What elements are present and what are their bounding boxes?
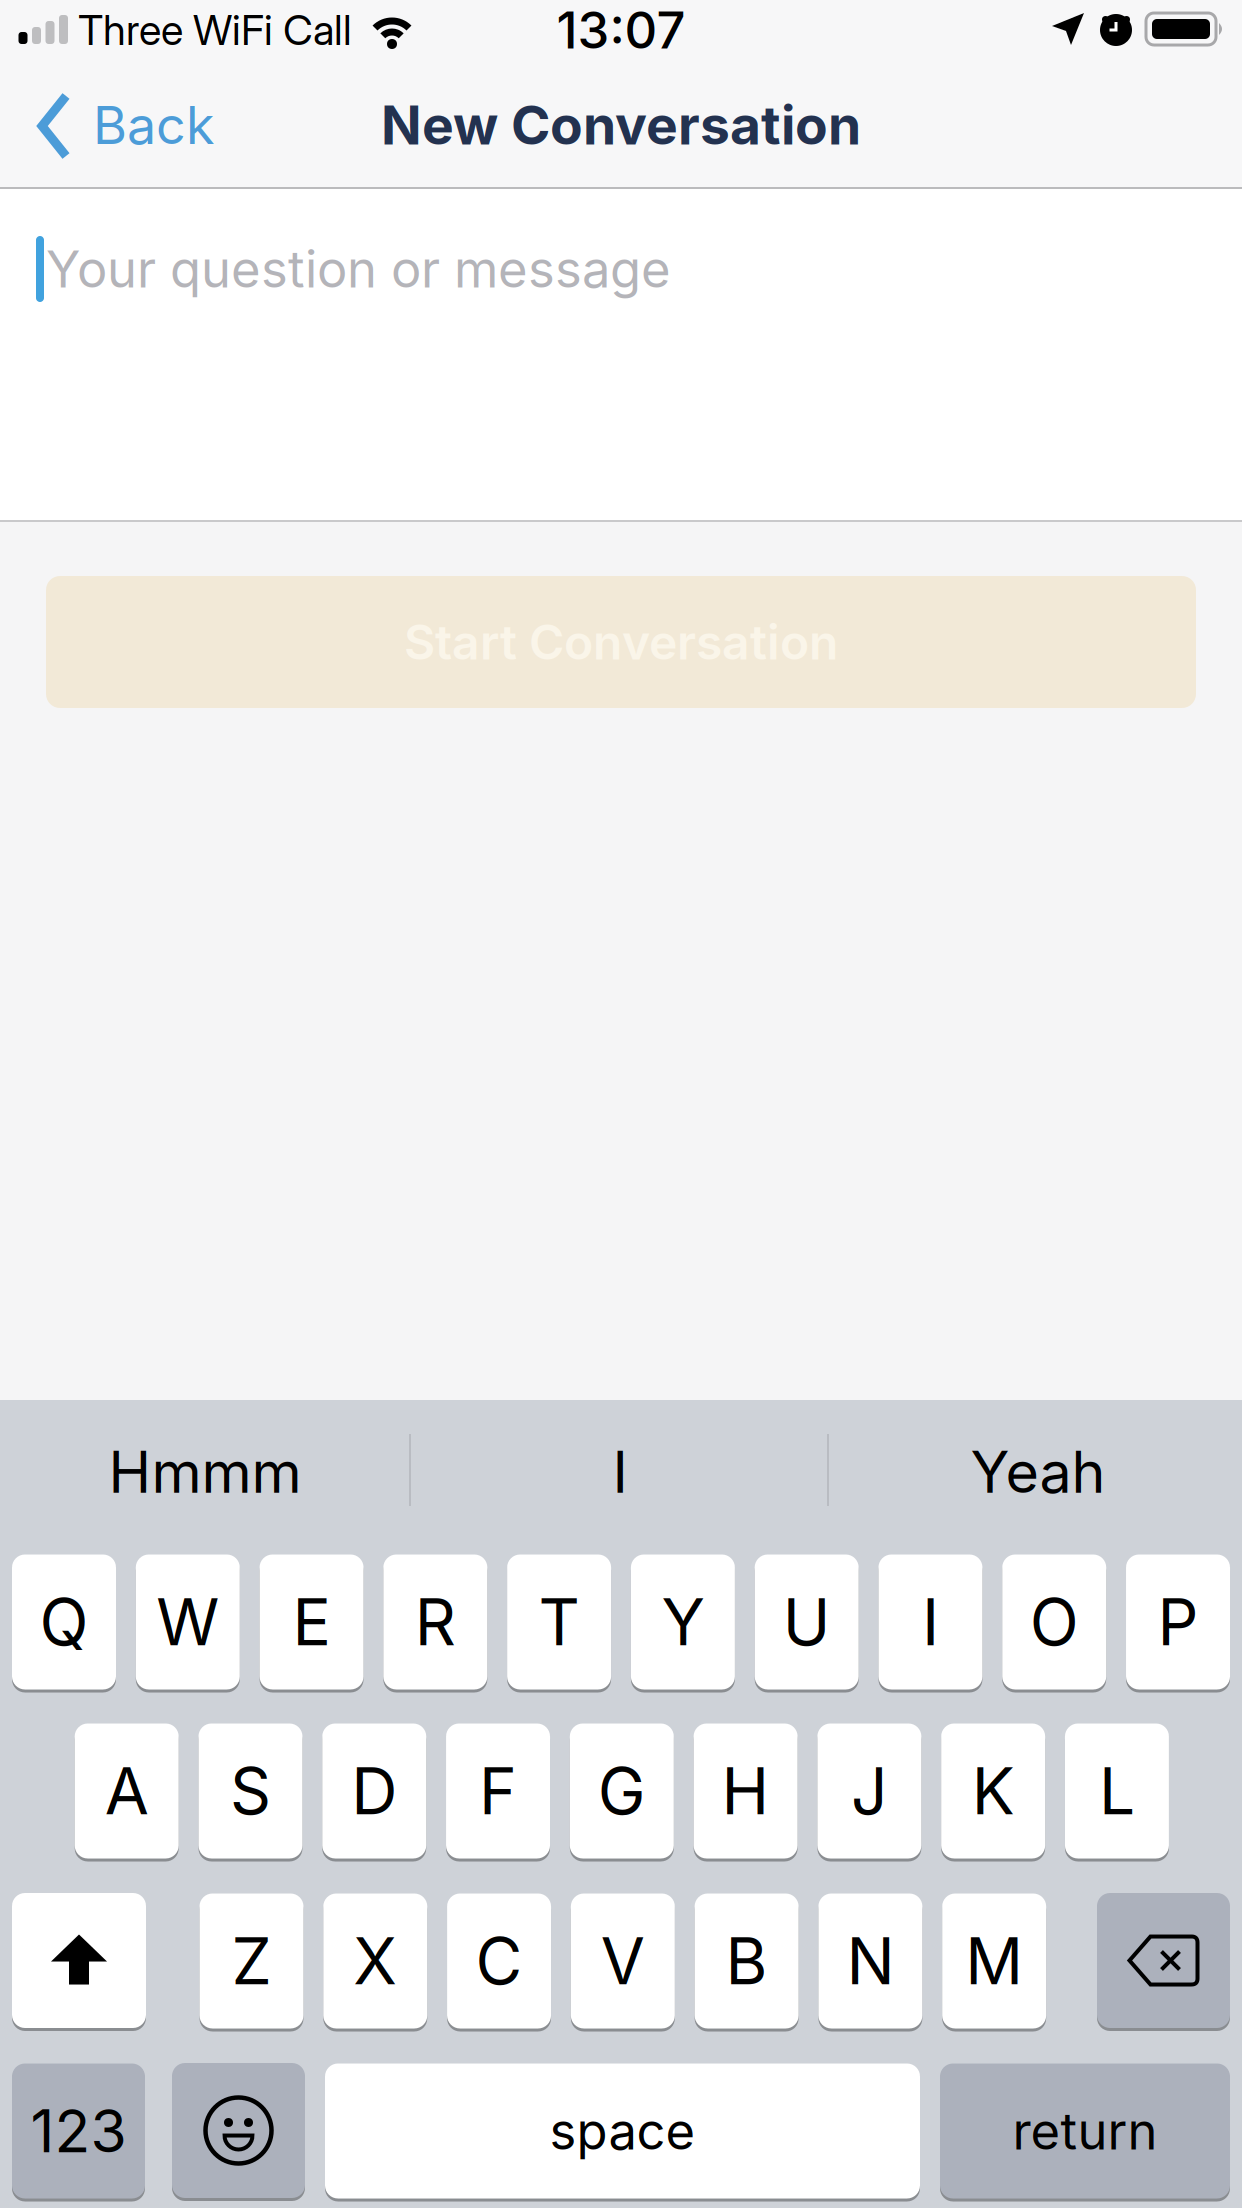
staticText: X — [353, 1922, 397, 2000]
button[interactable]: F — [446, 1722, 550, 1860]
button[interactable]: N — [818, 1892, 922, 2030]
button[interactable]: Q — [12, 1553, 116, 1691]
button[interactable]: return — [940, 2062, 1230, 2200]
button[interactable]: A — [75, 1722, 179, 1860]
button[interactable]: L — [1065, 1722, 1169, 1860]
staticText: Z — [231, 1922, 271, 2000]
button[interactable]: J — [817, 1722, 921, 1860]
staticText: B — [726, 1922, 768, 2000]
button[interactable]: P — [1126, 1553, 1230, 1691]
button[interactable]: K — [941, 1722, 1045, 1860]
staticText: N — [846, 1922, 894, 2000]
button[interactable]: Z — [199, 1892, 303, 2030]
staticText: Start Conversation — [404, 613, 838, 671]
staticText: Yeah — [970, 1437, 1105, 1507]
staticText: F — [479, 1752, 517, 1830]
staticText: Q — [39, 1583, 88, 1661]
button[interactable]: D — [322, 1722, 426, 1860]
button[interactable]: C — [447, 1892, 551, 2030]
button[interactable]: U — [755, 1553, 859, 1691]
button[interactable]: E — [260, 1553, 364, 1691]
button[interactable]: V — [571, 1892, 675, 2030]
button[interactable]: W — [136, 1553, 240, 1691]
button[interactable]: Hmmm — [10, 1402, 400, 1542]
staticText: P — [1157, 1583, 1198, 1661]
staticText: return — [1012, 2100, 1157, 2162]
staticText: Hmmm — [108, 1437, 301, 1507]
staticText: I — [612, 1437, 627, 1507]
button[interactable]: Back — [32, 81, 272, 171]
button[interactable]: T — [507, 1553, 611, 1691]
staticText: Three WiFi Call — [78, 5, 352, 55]
button[interactable]: I — [425, 1402, 815, 1542]
staticText: R — [415, 1583, 456, 1661]
button[interactable]: I — [878, 1553, 982, 1691]
staticText: O — [1030, 1583, 1079, 1661]
staticText: Y — [661, 1583, 704, 1661]
button[interactable]: Y — [631, 1553, 735, 1691]
button[interactable]: O — [1002, 1553, 1106, 1691]
staticText: E — [293, 1583, 331, 1661]
staticText: T — [539, 1583, 580, 1661]
button[interactable]: X — [323, 1892, 427, 2030]
staticText: C — [476, 1922, 523, 2000]
staticText: M — [965, 1922, 1023, 2000]
staticText: D — [351, 1752, 397, 1830]
button[interactable]: Yeah — [843, 1402, 1233, 1542]
staticText: S — [230, 1752, 271, 1830]
staticText: J — [851, 1752, 888, 1830]
button[interactable]: B — [695, 1892, 799, 2030]
staticText: H — [722, 1752, 770, 1830]
button[interactable]: R — [383, 1553, 487, 1691]
button[interactable] — [1097, 1891, 1230, 2029]
button[interactable]: H — [694, 1722, 798, 1860]
staticText: space — [549, 2100, 695, 2162]
staticText: I — [922, 1583, 939, 1661]
staticText: A — [105, 1752, 149, 1830]
button[interactable] — [172, 2061, 305, 2199]
staticText: Your question or message — [46, 238, 671, 300]
button[interactable]: space — [325, 2062, 920, 2200]
staticText: New Conversation — [381, 93, 861, 157]
staticText: 13:07 — [556, 0, 685, 61]
staticText: Back — [93, 93, 215, 156]
button[interactable]: S — [198, 1722, 302, 1860]
staticText: L — [1099, 1752, 1135, 1830]
button[interactable]: 123 — [12, 2062, 145, 2200]
button[interactable]: G — [570, 1722, 674, 1860]
staticText: 123 — [30, 2095, 126, 2166]
button[interactable]: Start Conversation — [46, 576, 1196, 708]
staticText: G — [598, 1752, 646, 1830]
staticText: K — [972, 1752, 1015, 1830]
staticText: V — [601, 1922, 645, 2000]
button[interactable]: M — [942, 1892, 1046, 2030]
staticText: U — [783, 1583, 831, 1661]
staticText: W — [156, 1583, 219, 1661]
button[interactable] — [12, 1891, 146, 2029]
